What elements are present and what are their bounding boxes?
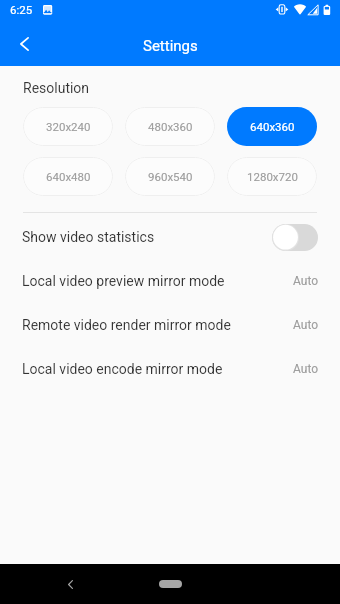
staticText: 640x360 xyxy=(250,120,295,133)
button[interactable]: Back xyxy=(6,26,42,62)
staticText: Local video encode mirror mode xyxy=(22,361,223,377)
staticText: 640x480 xyxy=(46,170,91,183)
button[interactable]: 640x360 xyxy=(227,107,317,146)
staticText: 6:25 xyxy=(10,3,33,16)
staticText: 1280x720 xyxy=(247,170,298,183)
staticText: Resolution xyxy=(23,80,90,96)
staticText: 320x240 xyxy=(46,120,91,133)
staticText: Auto xyxy=(293,362,319,376)
button[interactable]: 960x540 xyxy=(125,157,215,196)
button[interactable]: Home xyxy=(159,580,182,588)
staticText: Settings xyxy=(143,37,198,55)
staticText: Show video statistics xyxy=(22,229,155,245)
staticText: Local video preview mirror mode xyxy=(22,273,225,289)
button[interactable]: Remote video render mirror mode xyxy=(0,303,340,347)
button[interactable]: 320x240 xyxy=(23,107,113,146)
staticText: 480x360 xyxy=(148,120,193,133)
staticText: 960x540 xyxy=(148,170,193,183)
button[interactable]: Local video encode mirror mode xyxy=(0,347,340,391)
button[interactable]: 640x480 xyxy=(23,157,113,196)
button[interactable]: Back xyxy=(58,572,82,596)
staticText: Auto xyxy=(293,318,319,332)
button[interactable]: Local video preview mirror mode xyxy=(0,259,340,303)
button[interactable]: 1280x720 xyxy=(227,157,317,196)
staticText: Auto xyxy=(293,274,319,288)
button[interactable]: 480x360 xyxy=(125,107,215,146)
staticText: Remote video render mirror mode xyxy=(22,317,231,333)
button[interactable]: Show video statistics xyxy=(0,214,340,260)
